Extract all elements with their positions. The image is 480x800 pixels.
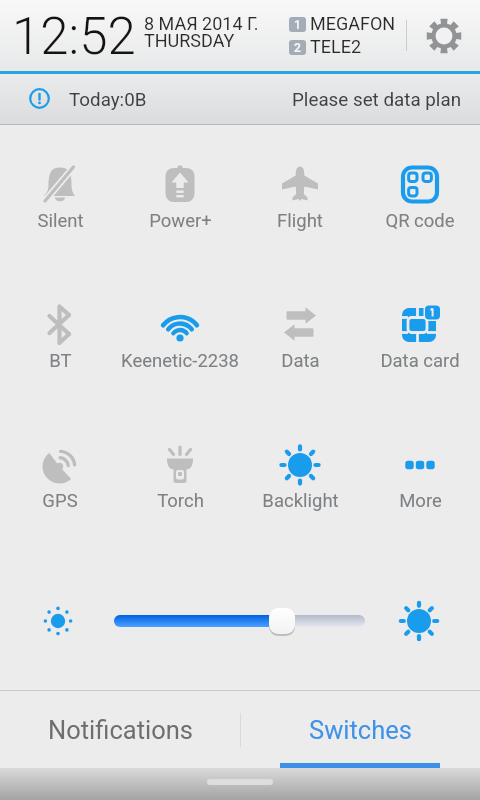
staticText: Switches [309, 715, 412, 745]
button[interactable]: Power+ [120, 130, 240, 270]
button[interactable]: Flight [240, 130, 360, 270]
staticText: Today:0B [69, 89, 147, 111]
button[interactable]: Backlight [240, 410, 360, 550]
button[interactable]: Torch [120, 410, 240, 550]
button[interactable]: QR code [360, 130, 480, 270]
button[interactable]: Notifications [0, 691, 240, 768]
button[interactable]: Settings [416, 8, 472, 64]
staticText: THURSDAY [144, 30, 235, 51]
button[interactable]: BT [0, 270, 120, 410]
staticText: Keenetic-2238 [121, 350, 239, 372]
staticText: Flight [277, 210, 323, 232]
staticText: 8 МАЯ 2014 Г. [144, 13, 259, 34]
button[interactable]: More [360, 410, 480, 550]
button[interactable]: Data card [360, 270, 480, 410]
staticText: BT [49, 350, 72, 372]
staticText: GPS [42, 490, 78, 512]
staticText: 12:52 [12, 7, 136, 67]
staticText: Please set data plan [292, 89, 462, 111]
staticText: Silent [37, 210, 84, 232]
staticText: Notifications [48, 715, 193, 745]
button[interactable]: Silent [0, 130, 120, 270]
button[interactable]: Today:0B [0, 74, 480, 124]
staticText: Backlight [262, 490, 339, 512]
staticText: Data card [380, 350, 460, 372]
staticText: 2 [294, 41, 301, 55]
button[interactable]: Brightness slider [269, 608, 295, 634]
staticText: QR code [385, 210, 455, 232]
button[interactable]: GPS [0, 410, 120, 550]
staticText: TELE2 [310, 36, 362, 57]
staticText: More [399, 490, 442, 512]
button[interactable]: Keenetic-2238 [120, 270, 240, 410]
staticText: Data [281, 350, 320, 372]
staticText: Torch [157, 490, 204, 512]
button[interactable]: Switches [240, 691, 480, 768]
staticText: 1 [294, 18, 301, 32]
button[interactable]: Data [240, 270, 360, 410]
staticText: MEGAFON [310, 13, 396, 34]
staticText: Power+ [149, 210, 212, 232]
